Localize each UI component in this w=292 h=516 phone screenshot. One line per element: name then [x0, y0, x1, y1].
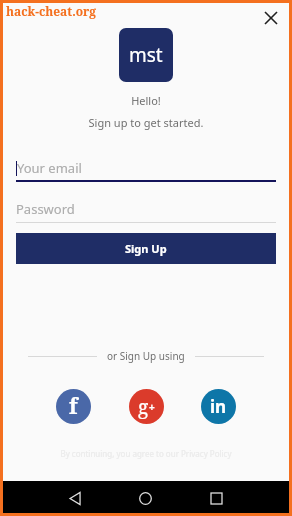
- button[interactable]: Close: [258, 5, 284, 31]
- staticText: Hello!: [0, 93, 292, 108]
- staticText: or Sign Up using: [107, 349, 185, 363]
- staticText: mst: [129, 42, 163, 68]
- staticText: hack-cheat.org: [6, 3, 97, 19]
- button[interactable]: Password: [16, 195, 276, 223]
- button[interactable]: Sign Up: [16, 233, 276, 264]
- button[interactable]: Sign up with LinkedIn: [201, 389, 236, 424]
- staticText: Sign up to get started.: [0, 115, 292, 130]
- staticText: in: [210, 395, 227, 418]
- button[interactable]: By continuing, you agree to our Privacy …: [0, 448, 292, 459]
- button[interactable]: Sign up with Facebook: [56, 389, 91, 424]
- staticText: Sign Up: [125, 241, 167, 256]
- staticText: +: [149, 400, 155, 414]
- staticText: Password: [16, 200, 75, 218]
- button[interactable]: Recent apps: [181, 481, 252, 516]
- button[interactable]: Home: [110, 481, 181, 516]
- button[interactable]: Your email: [16, 154, 276, 182]
- staticText: Your email: [17, 159, 82, 177]
- staticText: g: [138, 394, 149, 420]
- staticText: f: [69, 392, 78, 421]
- button[interactable]: Sign up with Google Plus: [129, 389, 164, 424]
- button[interactable]: Back: [40, 481, 110, 516]
